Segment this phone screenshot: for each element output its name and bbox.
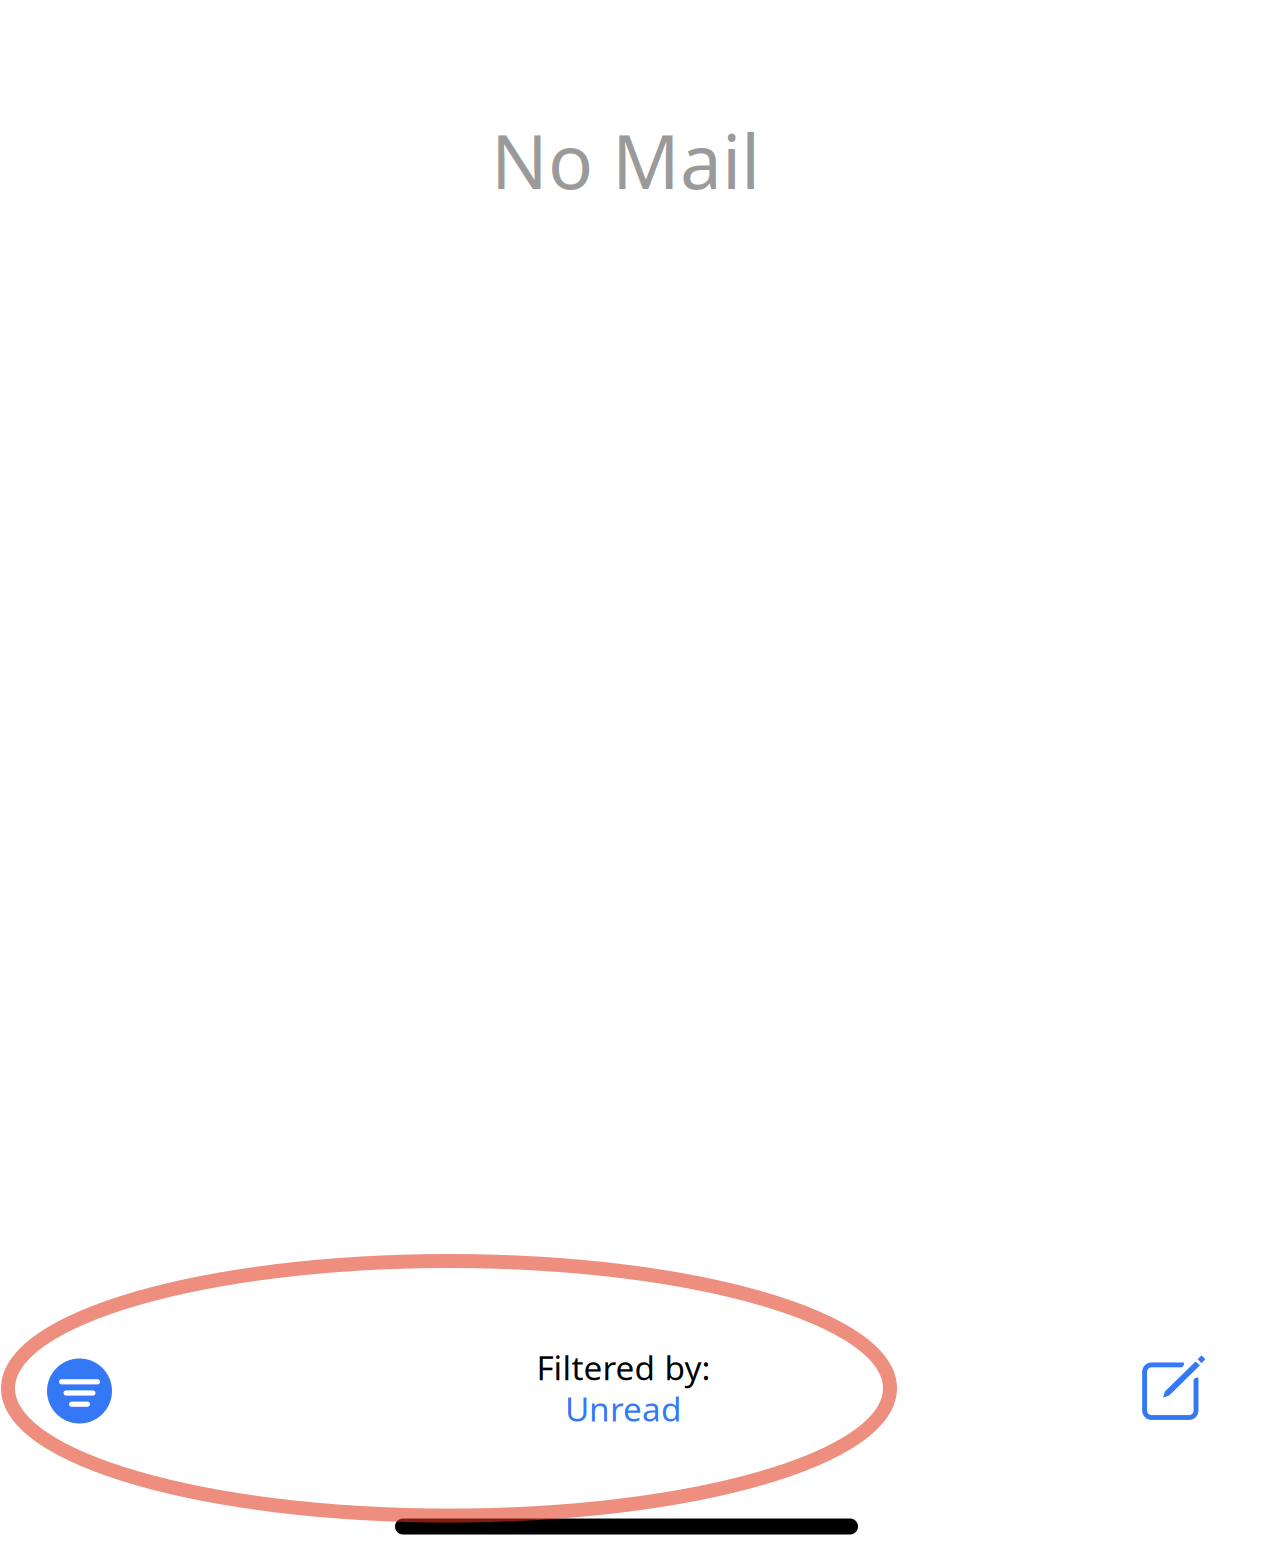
staticText: Filtered by: <box>536 1345 710 1389</box>
button[interactable]: Compose <box>1120 1341 1220 1441</box>
button[interactable]: Filter <box>29 1341 129 1441</box>
button[interactable]: Filtered by: <box>463 1338 783 1438</box>
staticText: No Mail <box>491 110 760 210</box>
staticText: Unread <box>565 1386 682 1431</box>
